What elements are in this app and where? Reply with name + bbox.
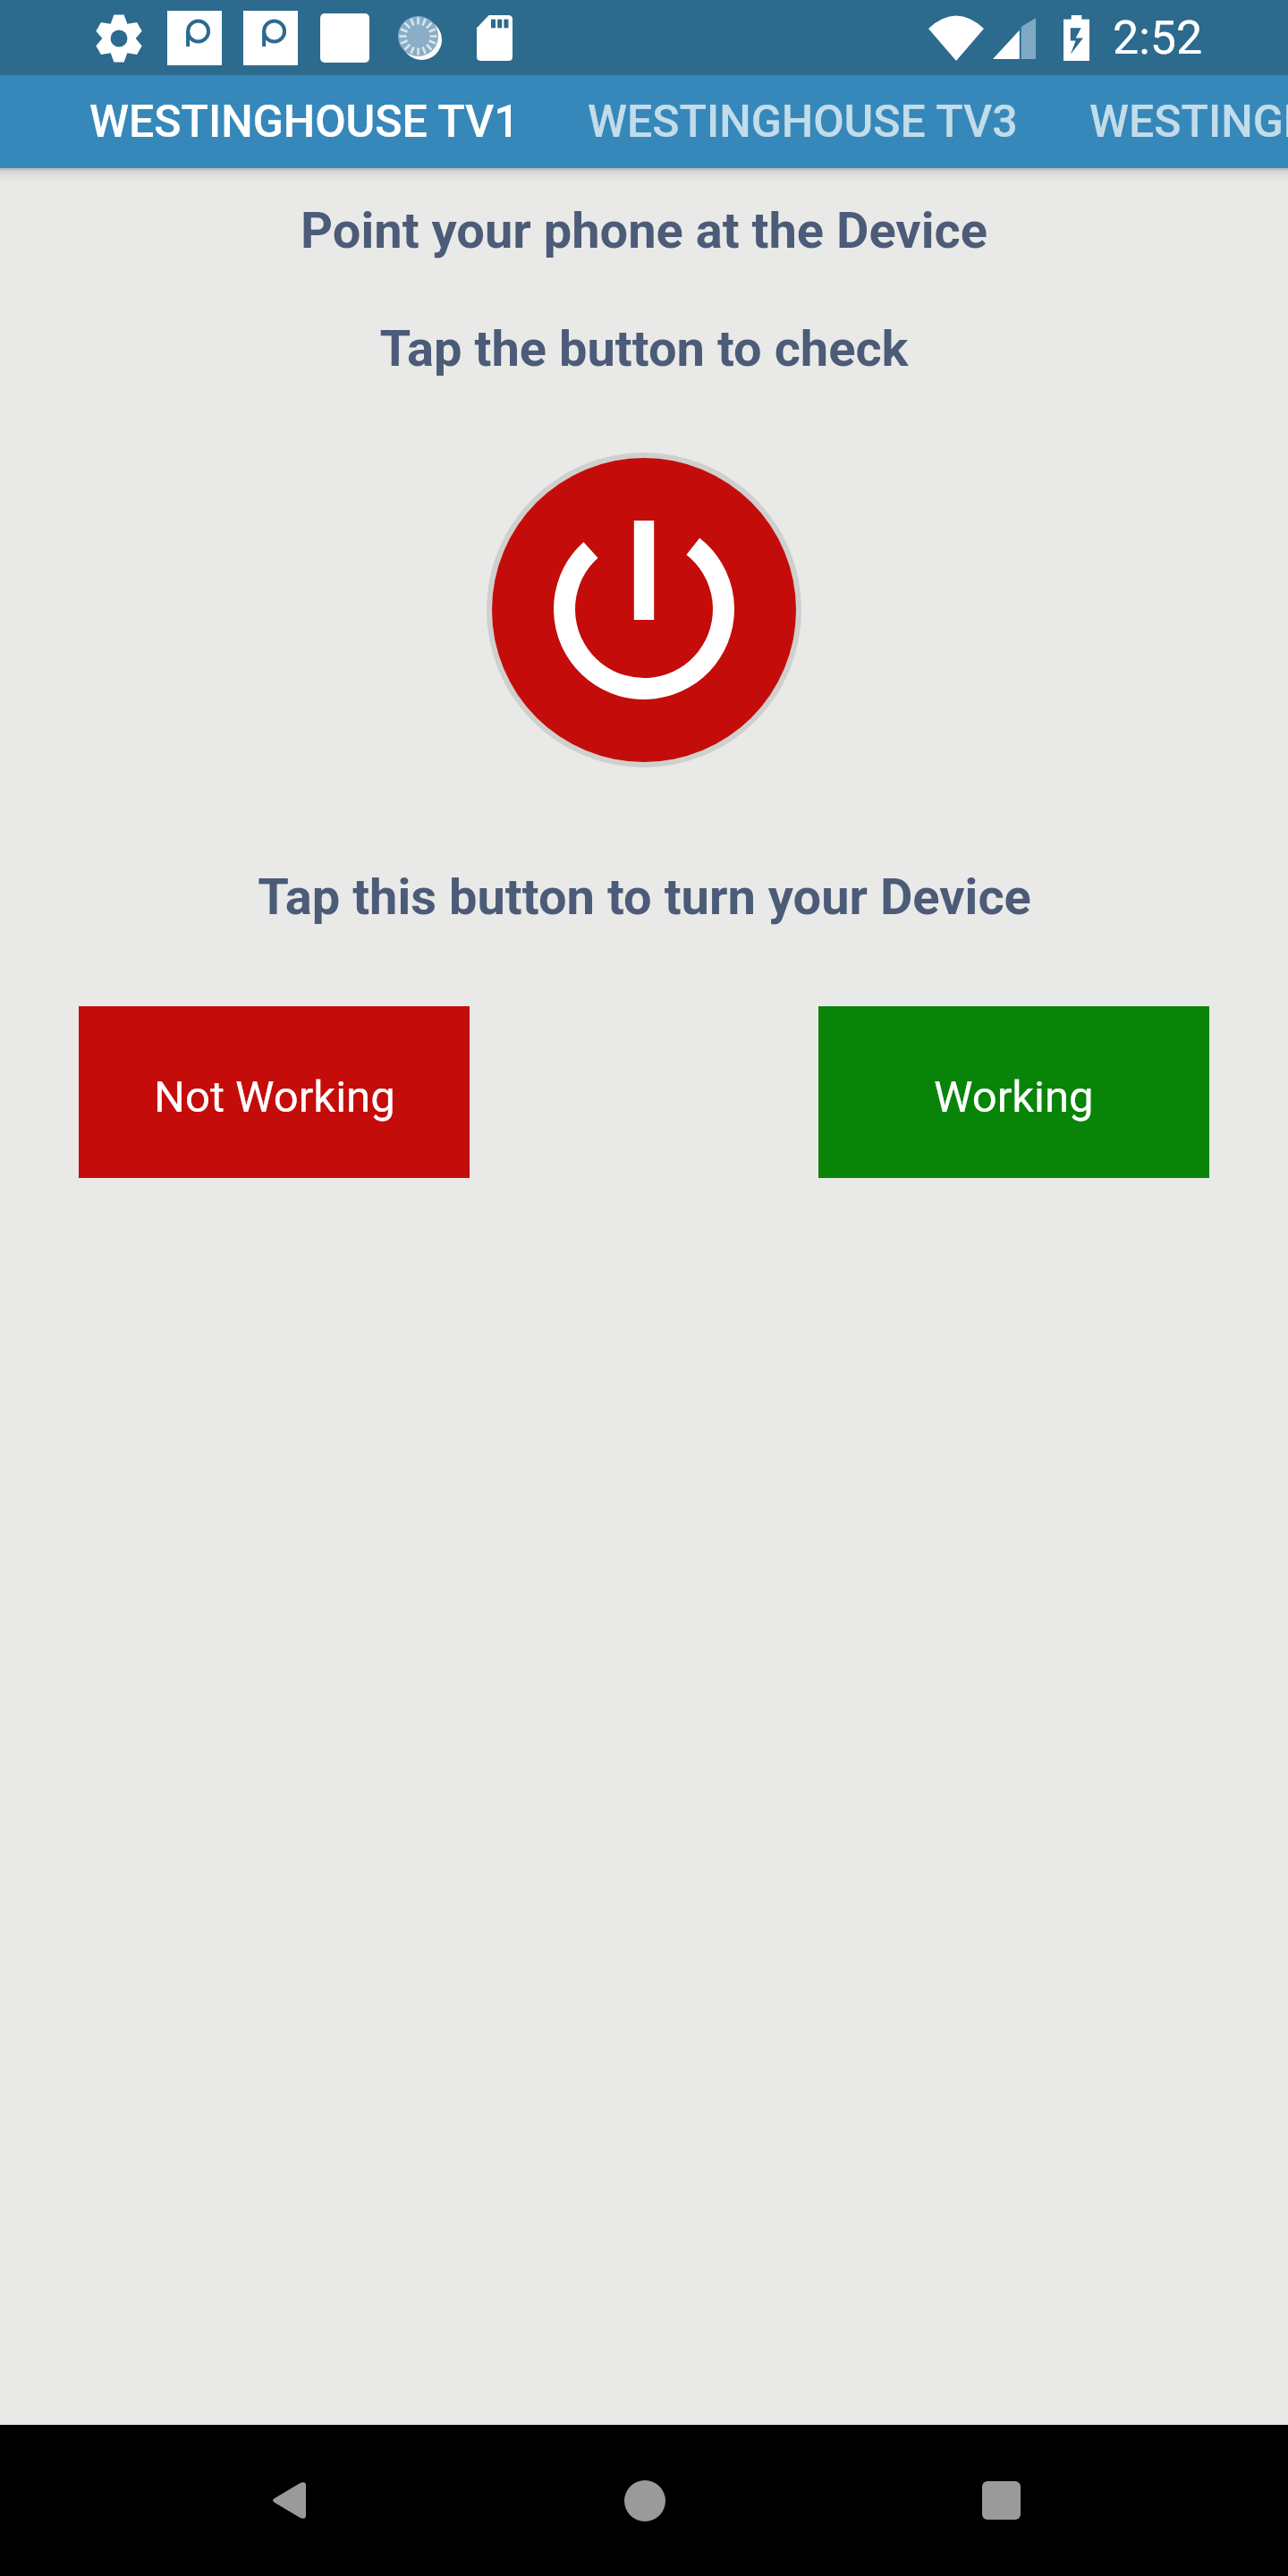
staticText: WESTINGHOUSE TV4 xyxy=(1089,96,1288,148)
button[interactable]: Home xyxy=(555,2425,733,2576)
button[interactable]: Not Working xyxy=(79,1006,470,1178)
staticText: Tap the button to check xyxy=(379,319,909,378)
staticText: Not Working xyxy=(154,1072,395,1123)
staticText: 2:52 xyxy=(1113,11,1203,65)
staticText: Working xyxy=(934,1072,1094,1123)
staticText: Tap this button to turn your Device xyxy=(258,868,1031,927)
button[interactable]: WESTINGHOUSE TV1 xyxy=(55,75,555,168)
staticText: WESTINGHOUSE TV3 xyxy=(588,96,1018,148)
button[interactable]: Recents xyxy=(912,2425,1090,2576)
button[interactable]: Power xyxy=(492,458,796,762)
button[interactable]: Working xyxy=(818,1006,1209,1178)
staticText: Point your phone at the Device xyxy=(301,201,987,260)
button[interactable]: WESTINGHOUSE TV3 xyxy=(553,75,1053,168)
button[interactable]: WESTINGHOUSE TV4 xyxy=(1055,75,1288,168)
staticText: WESTINGHOUSE TV1 xyxy=(89,96,520,148)
button[interactable]: Back xyxy=(199,2425,377,2576)
